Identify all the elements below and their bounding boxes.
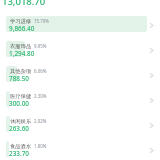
staticText: 食品酒水 <box>10 143 32 150</box>
staticText: 263.60 <box>9 124 30 133</box>
staticText: 1.80% <box>34 143 47 149</box>
staticText: 衣服饰品 <box>10 43 32 50</box>
staticText: 9.95% <box>34 43 47 49</box>
button[interactable]: 食品酒水 <box>0 138 160 160</box>
button[interactable]: 休闲娱乐 <box>0 113 160 138</box>
button[interactable]: 衣服饰品 <box>0 38 160 63</box>
staticText: 其他杂项 <box>10 68 32 75</box>
other: Details <box>147 121 156 130</box>
staticText: 学习进修 <box>10 18 32 25</box>
staticText: 1,294.80 <box>9 49 35 58</box>
button[interactable]: 学习进修 <box>0 13 160 38</box>
staticText: 9,866.40 <box>9 24 35 33</box>
staticText: 2.02% <box>34 118 47 124</box>
other: Details <box>147 46 156 55</box>
button[interactable]: 其他杂项 <box>0 63 160 88</box>
staticText: 医疗保健 <box>10 93 32 100</box>
staticText: 788.50 <box>9 74 30 83</box>
staticText: 6.06% <box>34 68 47 74</box>
staticText: 休闲娱乐 <box>10 118 32 125</box>
other: Details <box>147 71 156 80</box>
other: Details <box>147 21 156 30</box>
staticText: 2.30% <box>34 93 47 99</box>
staticText: 75.79% <box>34 18 49 24</box>
other: Details <box>147 96 156 105</box>
button[interactable]: 医疗保健 <box>0 88 160 113</box>
other: Details <box>147 146 156 155</box>
staticText: 233.70 <box>9 149 30 158</box>
staticText: 300.00 <box>9 99 30 108</box>
staticText: 13,018.70 <box>2 0 46 8</box>
